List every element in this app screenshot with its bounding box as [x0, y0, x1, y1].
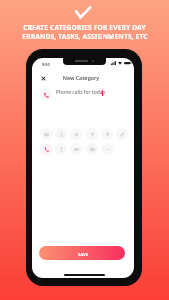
button[interactable]: category icon 2 [55, 128, 67, 140]
button[interactable]: category icon 4 [86, 128, 98, 140]
button[interactable]: category icon 3 [70, 128, 82, 140]
staticText: ERRANDS, TASKS, ASSIGNMENTS, ETC [22, 32, 148, 41]
button[interactable]: Close [36, 71, 50, 85]
staticText: 9:50 [42, 62, 50, 67]
staticText: CREATE CATEGORIES FOR EVERY DAY [23, 23, 146, 32]
button[interactable]: category icon 11 [101, 143, 113, 155]
button[interactable]: category icon 1 [40, 128, 52, 140]
staticText: Phone calls for today [56, 89, 106, 96]
button[interactable]: category icon 6 [116, 128, 128, 140]
staticText: SAVE [78, 252, 89, 257]
button[interactable]: category icon 7 [40, 143, 52, 155]
staticText: New Category [32, 74, 132, 81]
button[interactable]: SAVE [39, 246, 125, 260]
button[interactable]: category icon 5 [101, 128, 113, 140]
button[interactable]: category icon 10 [86, 143, 98, 155]
button[interactable]: category icon 8 [55, 143, 67, 155]
button[interactable]: category icon 9 [70, 143, 82, 155]
